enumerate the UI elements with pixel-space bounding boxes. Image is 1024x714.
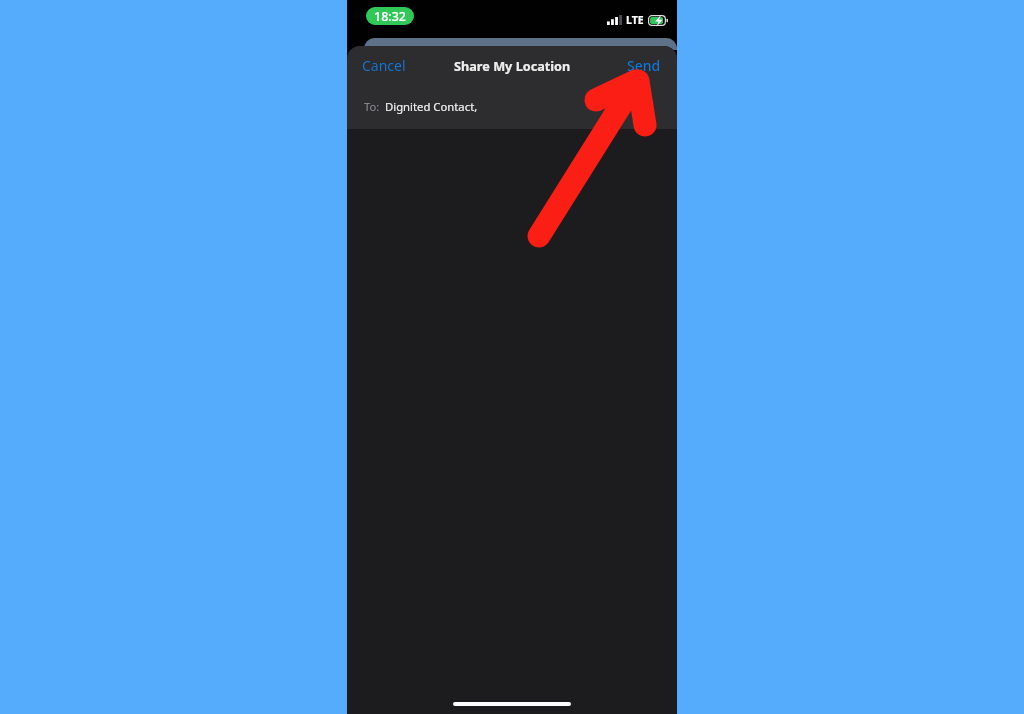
staticText: Share My Location <box>454 57 571 74</box>
button[interactable]: To: <box>347 84 677 129</box>
button[interactable]: Cancel <box>347 48 418 83</box>
staticText: Cancel <box>362 56 406 75</box>
button[interactable]: Send <box>615 48 677 83</box>
staticText: Send <box>627 56 661 75</box>
staticText: Dignited Contact, <box>385 99 478 114</box>
staticText: LTE <box>626 13 644 27</box>
staticText: To: <box>364 99 380 114</box>
other: Tap Send annotation <box>0 0 1024 714</box>
staticText: 18:32 <box>374 8 407 25</box>
